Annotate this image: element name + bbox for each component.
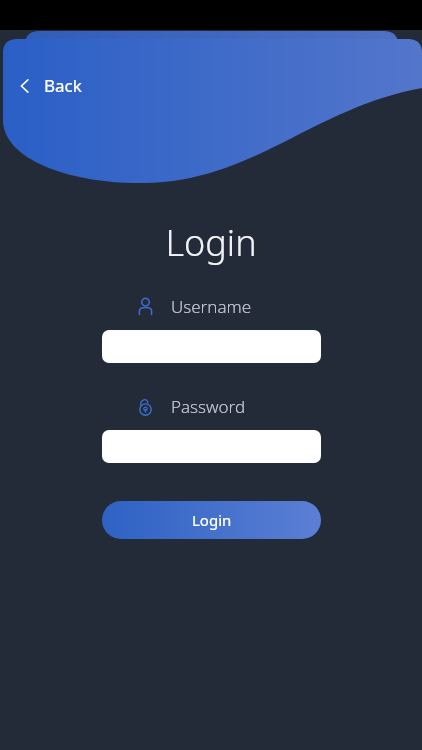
staticText: Login — [192, 510, 232, 530]
button[interactable]: Back — [10, 68, 88, 103]
button[interactable] — [102, 330, 321, 363]
staticText: Username — [171, 295, 252, 318]
staticText: Back — [44, 74, 82, 97]
button[interactable] — [102, 430, 321, 463]
button[interactable]: Login — [102, 501, 321, 539]
staticText: Login — [165, 218, 257, 267]
staticText: Password — [171, 395, 246, 418]
other: Password — [136, 397, 155, 416]
other: Username — [136, 297, 155, 316]
